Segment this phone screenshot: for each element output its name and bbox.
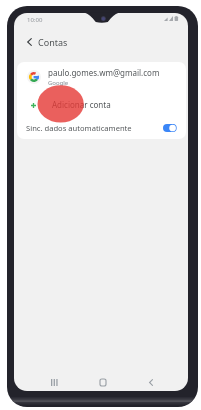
button[interactable]: Adicionar conta: [17, 92, 186, 117]
staticText: 10:00: [27, 16, 43, 24]
button[interactable]: Back: [20, 33, 38, 51]
button[interactable]: Back: [141, 374, 161, 390]
staticText: paulo.gomes.wm@gmail.com: [48, 67, 160, 78]
staticText: Contas: [38, 36, 68, 48]
button[interactable]: Recent apps: [44, 374, 64, 390]
button[interactable]: paulo.gomes.wm@gmail.com: [17, 62, 186, 92]
staticText: Adicionar conta: [52, 99, 111, 110]
staticText: Sinc. dados automaticamente: [26, 123, 132, 133]
staticText: Google: [48, 79, 69, 87]
button[interactable]: Sinc. dados automaticamente: [17, 117, 186, 139]
button[interactable]: Home: [93, 374, 113, 390]
